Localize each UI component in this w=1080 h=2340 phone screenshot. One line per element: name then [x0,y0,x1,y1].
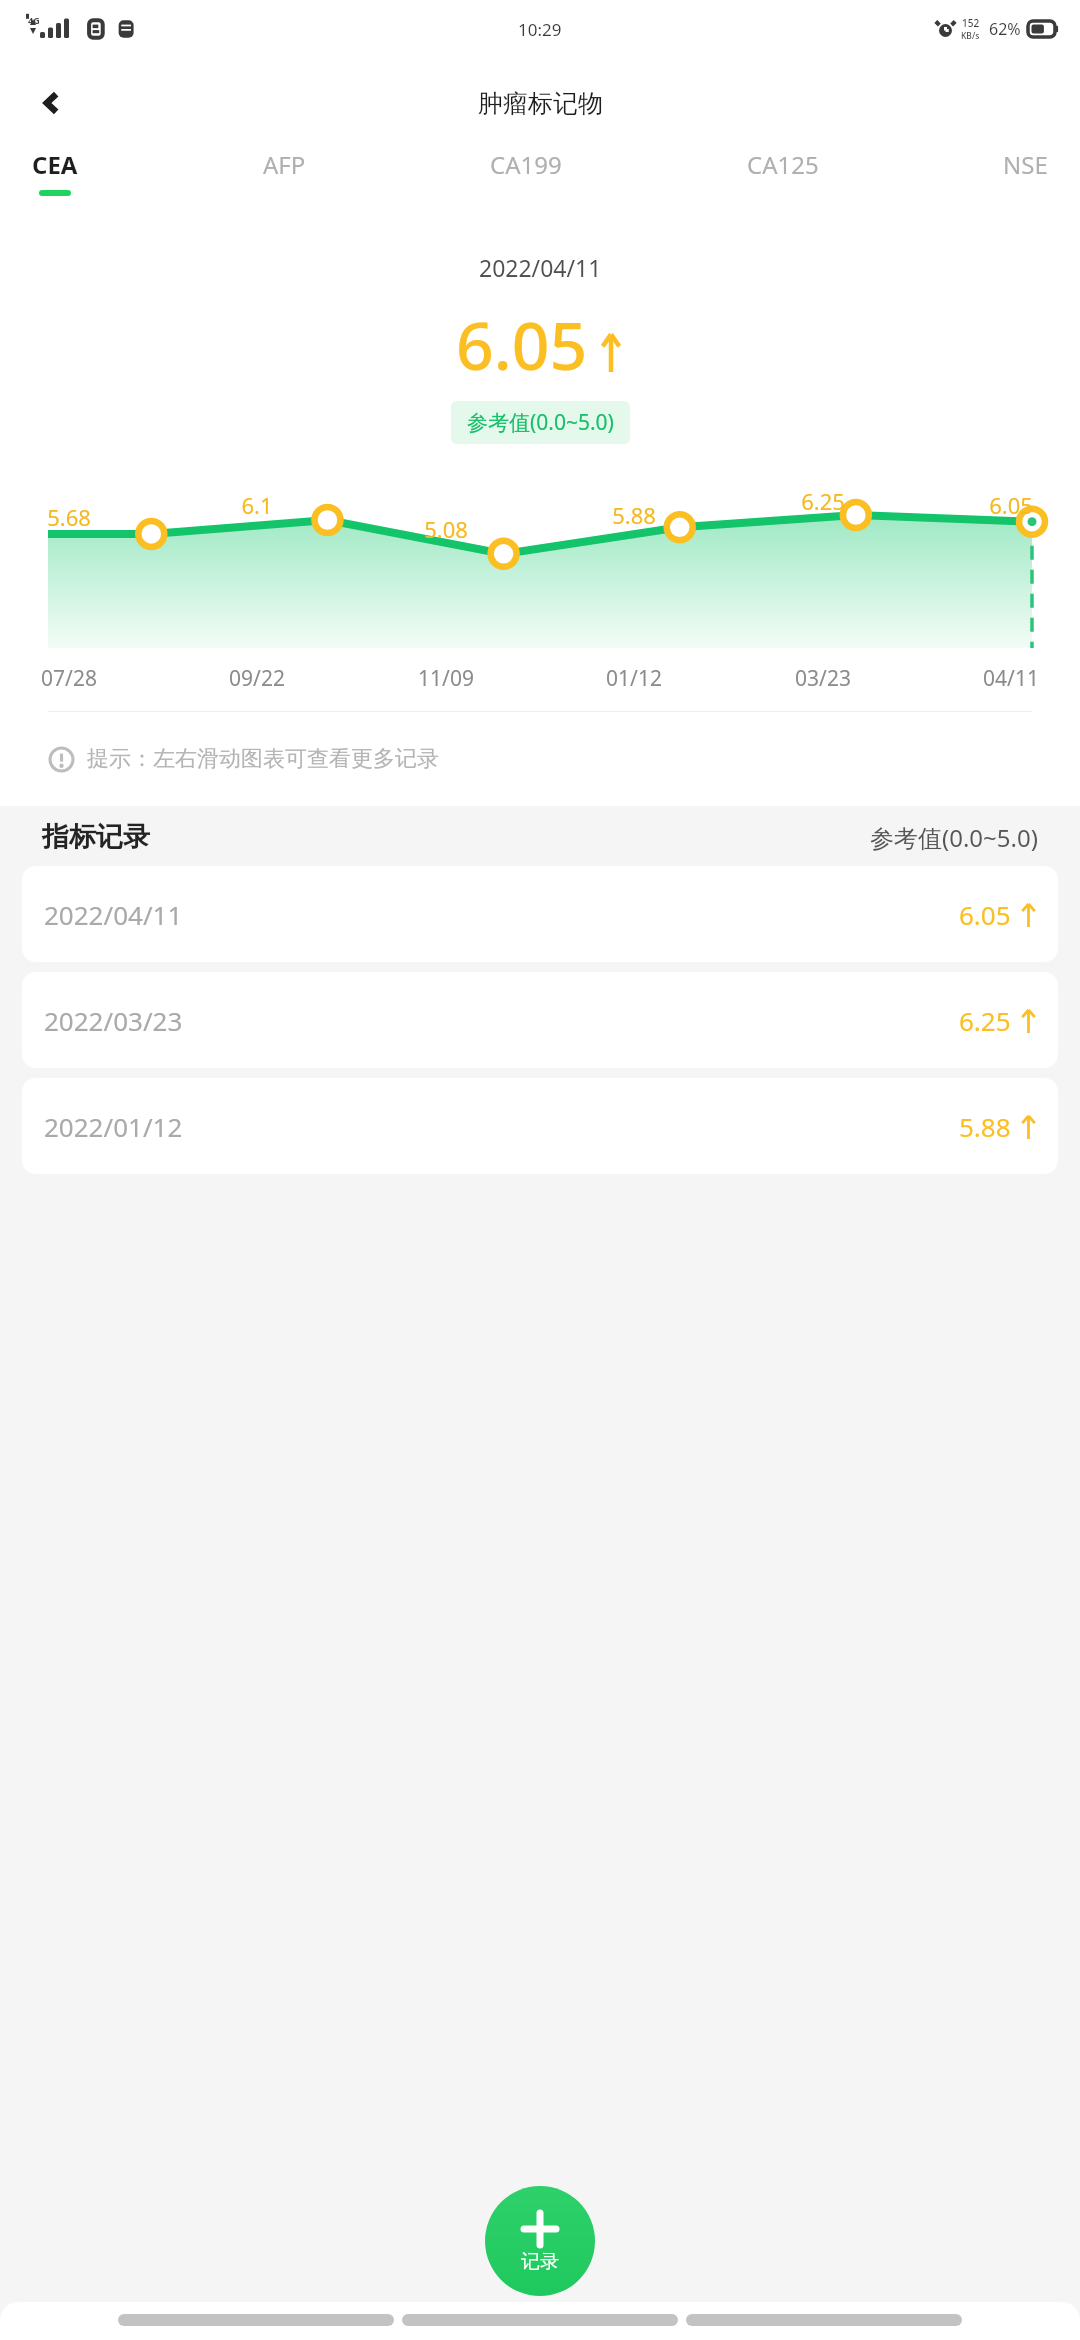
button[interactable] [118,2314,394,2326]
staticText: 参考值(0.0~5.0) [870,821,1038,854]
button[interactable]: CA125 [745,148,821,190]
button[interactable]: CEA [30,148,80,196]
staticText: CA125 [747,148,819,181]
button[interactable]: CA199 [488,148,564,190]
staticText: AFP [263,148,306,181]
staticText: 6.05 [456,299,588,389]
staticText: 2022/01/12 [44,1109,183,1144]
staticText: 提示：左右滑动图表可查看更多记录 [87,745,439,773]
staticText: 肿瘤标记物 [478,88,603,119]
staticText: 5.68 [47,502,91,532]
staticText: 5.08 [424,514,468,544]
staticText: CA199 [490,148,562,181]
button[interactable]: 2022/04/11 [22,866,1058,962]
staticText: KB/s [961,30,980,42]
staticText: 6.05 [989,490,1033,520]
staticText: 09/22 [229,664,285,693]
staticText: 记录 [521,2250,559,2274]
button[interactable] [686,2314,962,2326]
staticText: 2022/04/11 [479,252,602,283]
staticText: 01/12 [606,664,662,693]
staticText: 2022/04/11 [44,897,183,932]
staticText: 指标记录 [42,820,150,854]
button[interactable]: 2022/03/23 [22,972,1058,1068]
button[interactable]: NSE [1001,148,1050,190]
button[interactable]: Back [24,75,80,131]
staticText: 6.1 [241,490,273,520]
button[interactable]: 2022/01/12 [22,1078,1058,1174]
staticText: CEA [32,148,78,181]
staticText: 5.88 [612,500,656,530]
staticText: 07/28 [41,664,97,693]
button[interactable] [402,2314,678,2326]
staticText: 5.88 [959,1109,1011,1144]
button[interactable]: Add record [485,2186,595,2296]
staticText: 2022/03/23 [44,1003,183,1038]
staticText: 62% [989,18,1021,40]
staticText: 11/09 [418,664,474,693]
staticText: 04/11 [983,664,1039,693]
staticText: 10:29 [518,18,562,41]
staticText: 6.05 [959,897,1011,932]
staticText: 152 [962,16,980,30]
staticText: 6.25 [801,486,845,516]
staticText: 6.25 [959,1003,1011,1038]
staticText: 4G [28,14,40,26]
staticText: 03/23 [795,664,851,693]
staticText: 参考值(0.0~5.0) [467,408,614,437]
staticText: NSE [1003,148,1048,181]
button[interactable]: AFP [261,148,308,190]
